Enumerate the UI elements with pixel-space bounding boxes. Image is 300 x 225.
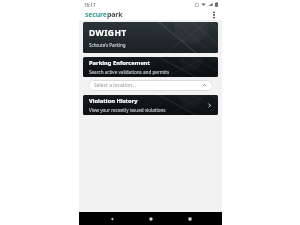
button[interactable]: Parking Enforcement [83,57,218,77]
button[interactable]: Violation History [83,95,218,115]
staticText: secure [85,10,107,20]
staticText: Parking Enforcement [89,59,151,67]
staticText: Search active validations and permits [89,69,170,75]
staticText: park [107,10,123,20]
button[interactable]: DWIGHT [83,22,218,53]
staticText: Violation History [89,97,138,105]
button[interactable]: Recent apps [183,212,196,225]
button[interactable]: Home [144,212,157,225]
staticText: Select a location... [94,82,202,89]
button[interactable]: Back [105,212,118,225]
staticText: 16:17 [84,2,96,8]
button[interactable]: Select a location... [88,80,213,91]
button[interactable]: More options [208,9,219,20]
staticText: Schrute's Parking [89,42,126,48]
staticText: View your recently issued violations [89,107,166,113]
staticText: DWIGHT [89,27,127,39]
